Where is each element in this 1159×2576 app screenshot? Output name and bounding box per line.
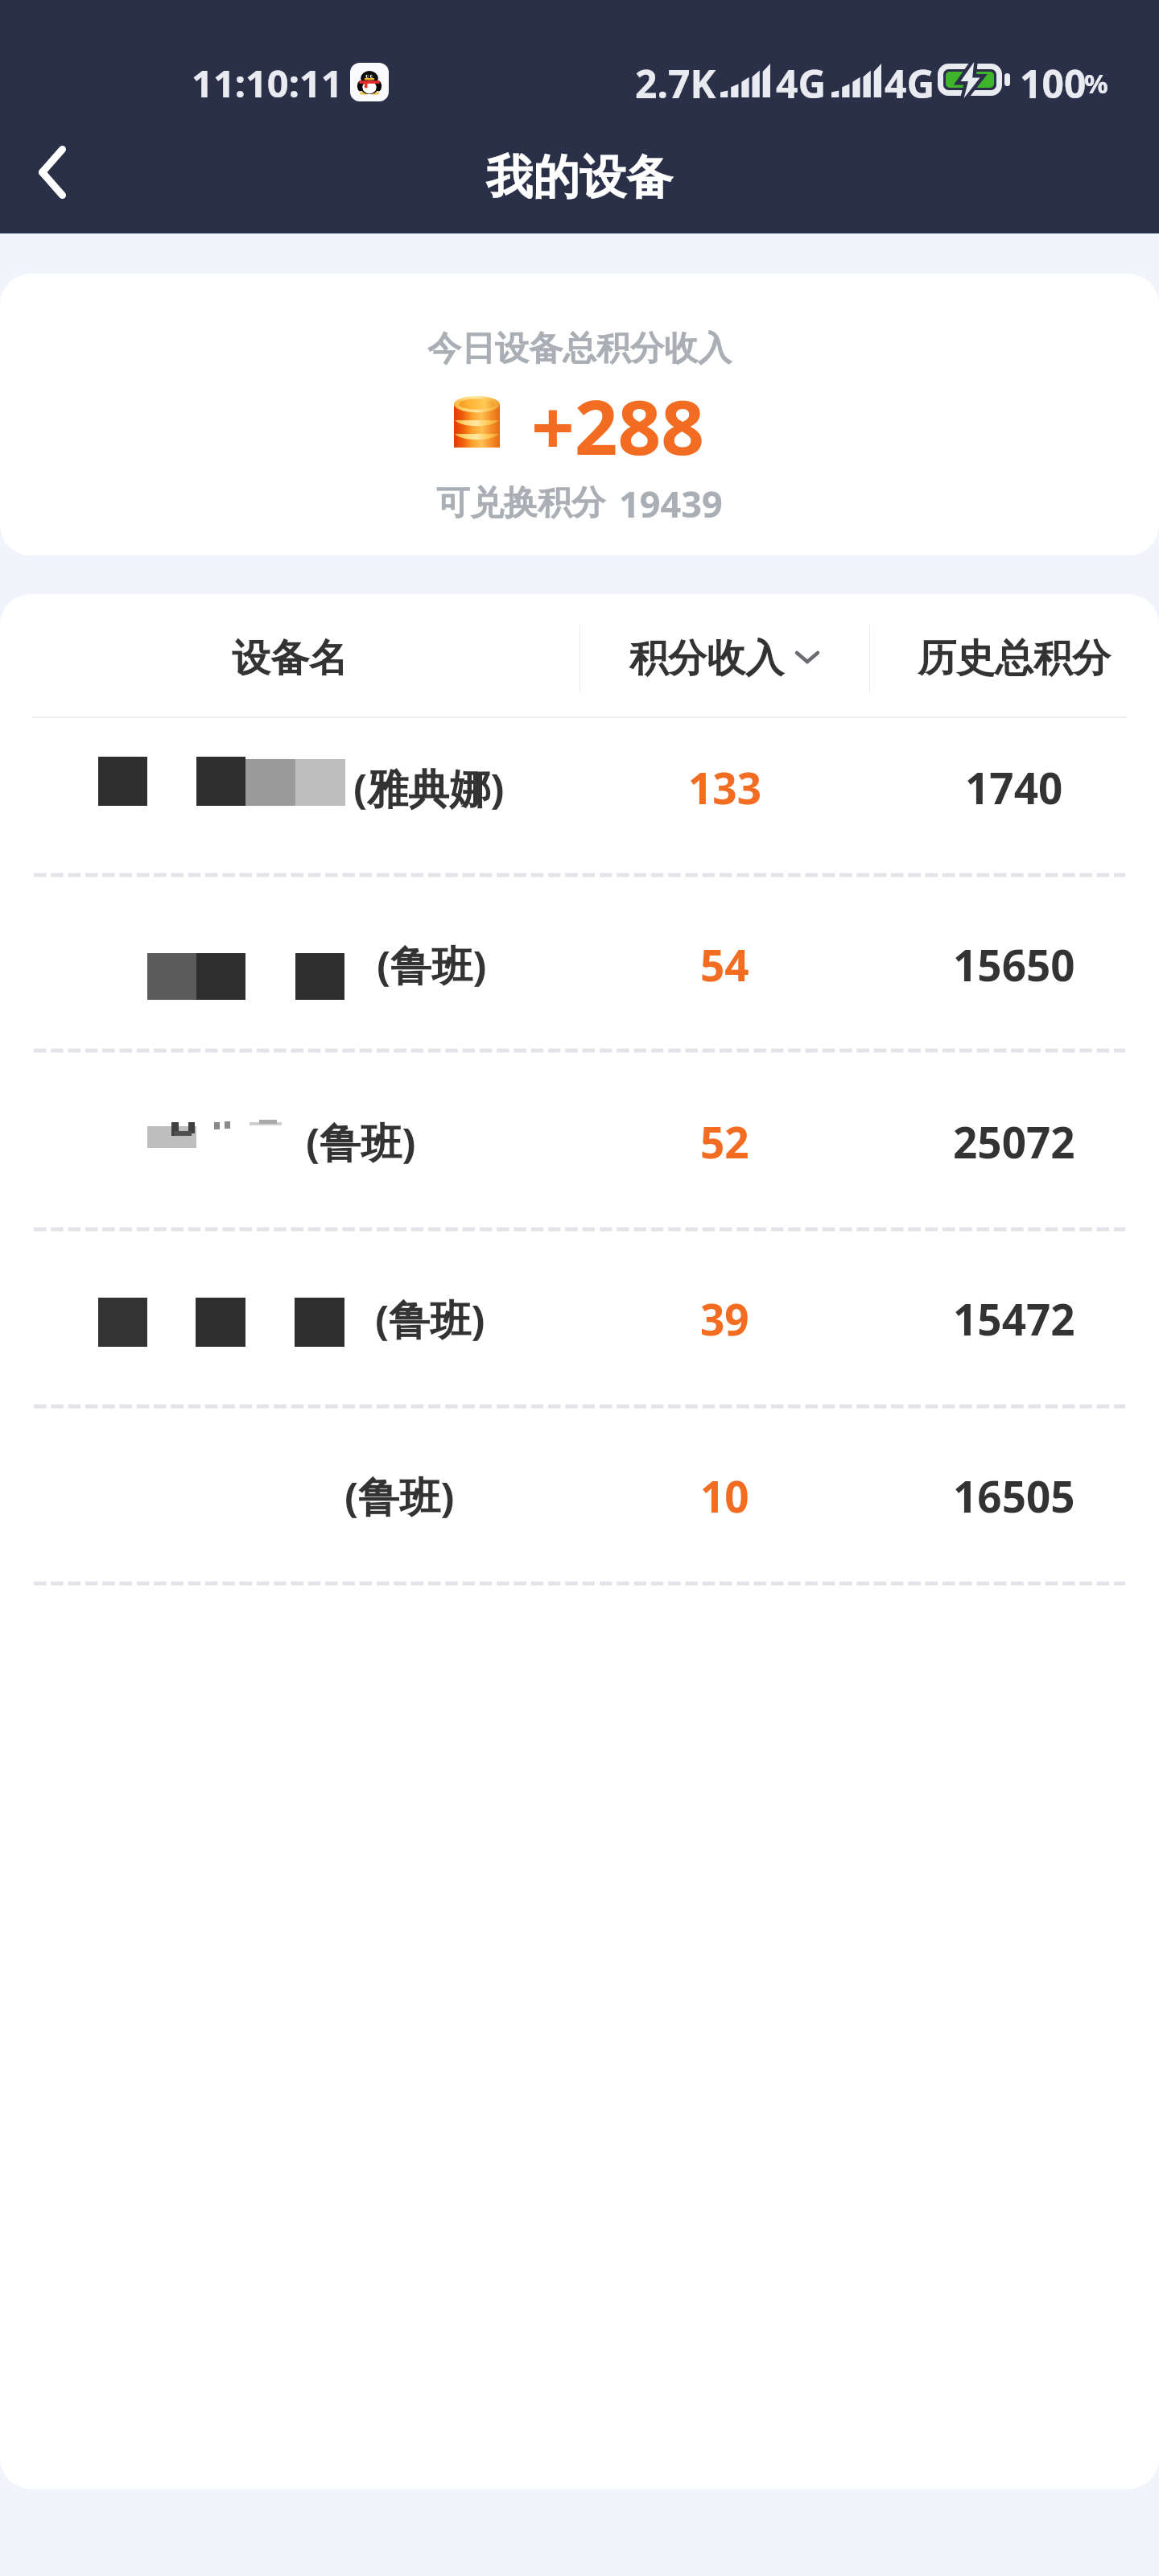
staticText: 4G <box>776 57 827 109</box>
staticText: (鲁班) <box>377 936 487 993</box>
button[interactable]: (雅典娜) <box>0 717 1159 873</box>
staticText: 100 <box>1020 57 1087 109</box>
staticText: +288 <box>531 374 705 471</box>
button[interactable]: (鲁班) <box>0 1228 1159 1405</box>
staticText: 可兑换积分 <box>436 482 605 525</box>
staticText: % <box>1084 65 1108 101</box>
staticText: 16505 <box>953 1467 1075 1525</box>
staticText: 15472 <box>953 1290 1075 1348</box>
staticText: 2.7K <box>635 57 716 109</box>
staticText: 今日设备总积分收入 <box>427 328 732 370</box>
staticText: 11:10:11 <box>192 57 343 109</box>
staticText: (鲁班) <box>375 1290 485 1347</box>
staticText: 10 <box>700 1467 749 1525</box>
staticText: 25072 <box>953 1113 1075 1170</box>
staticText: 积分收入 <box>629 634 784 683</box>
staticText: 1740 <box>965 758 1063 816</box>
staticText: 4G <box>885 57 935 109</box>
staticText: (鲁班) <box>306 1113 416 1170</box>
button[interactable]: 积分收入 <box>579 598 869 719</box>
staticText: 15650 <box>953 935 1075 993</box>
staticText: 39 <box>700 1290 749 1348</box>
button[interactable]: Back <box>8 128 97 217</box>
button[interactable]: (鲁班) <box>0 1405 1159 1582</box>
staticText: (雅典娜) <box>353 759 505 815</box>
staticText: 52 <box>700 1113 749 1170</box>
staticText: 历史总积分 <box>918 634 1111 683</box>
button[interactable]: (鲁班) <box>0 1049 1159 1228</box>
staticText: 133 <box>688 758 761 816</box>
staticText: 我的设备 <box>486 148 673 207</box>
button[interactable]: (鲁班) <box>0 873 1159 1049</box>
staticText: 设备名 <box>232 634 348 683</box>
staticText: (鲁班) <box>344 1468 455 1524</box>
staticText: 19439 <box>619 479 723 528</box>
staticText: 54 <box>700 935 749 993</box>
